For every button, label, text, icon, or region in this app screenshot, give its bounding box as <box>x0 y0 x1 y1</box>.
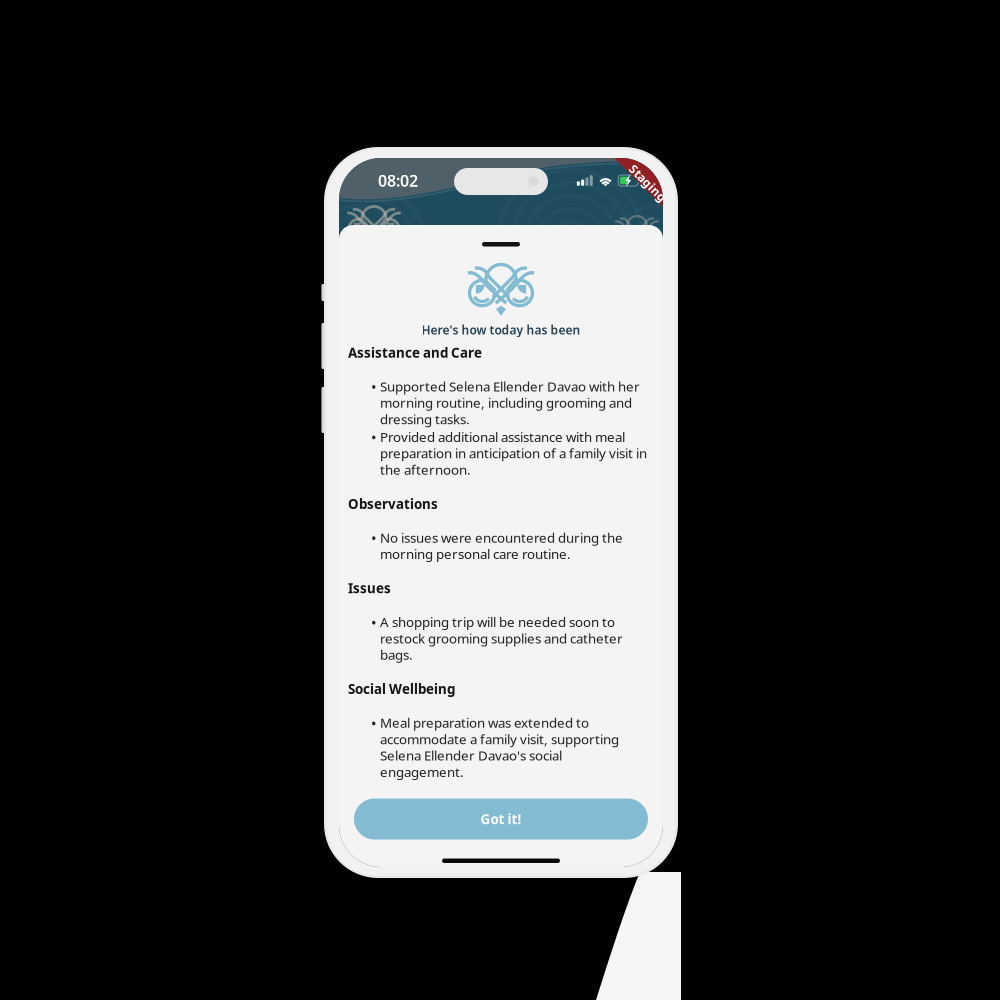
staticText: Social Wellbeing <box>348 680 455 698</box>
button[interactable]: Got it! <box>354 798 648 839</box>
staticText: Meal preparation was extended to accommo… <box>380 714 619 781</box>
staticText: Got it! <box>480 810 521 828</box>
staticText: A shopping trip will be needed soon to r… <box>380 613 623 663</box>
staticText: • <box>371 428 377 447</box>
staticText: Observations <box>348 495 438 513</box>
staticText: Here's how today has been <box>421 322 580 338</box>
staticText: 08:02 <box>378 170 418 191</box>
staticText: Provided additional assistance with meal… <box>380 428 647 478</box>
staticText: • <box>371 529 377 548</box>
staticText: • <box>371 613 377 632</box>
staticText: • <box>371 377 377 397</box>
staticText: No issues were encountered during the mo… <box>380 529 623 563</box>
staticText: Assistance and Care <box>348 344 482 361</box>
staticText: Issues <box>348 579 391 597</box>
staticText: Supported Selena Ellender Davao with her… <box>380 377 640 428</box>
staticText: • <box>371 714 377 733</box>
staticText: Staging <box>624 175 671 191</box>
